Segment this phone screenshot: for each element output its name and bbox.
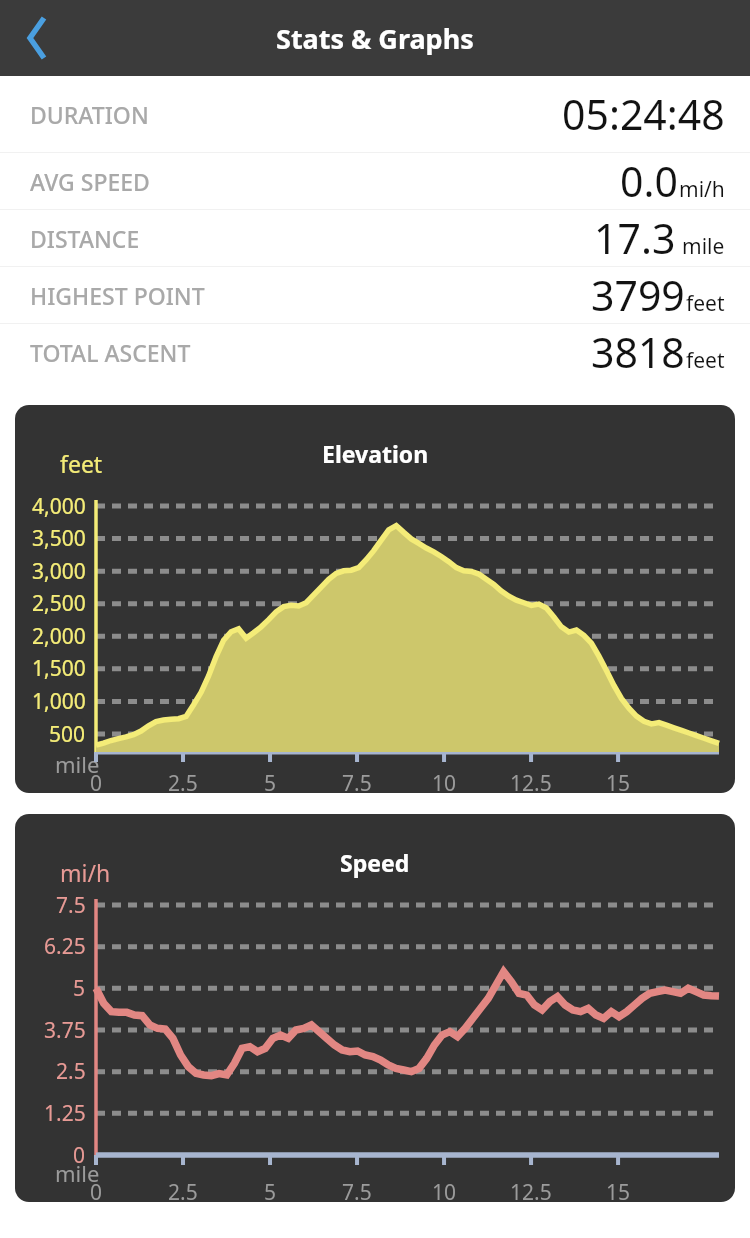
staticText: 0 — [73, 1141, 86, 1170]
button[interactable]: Back — [4, 8, 64, 68]
staticText: DISTANCE — [30, 223, 140, 254]
button[interactable]: HIGHEST POINT — [0, 267, 750, 323]
staticText: 7.5 — [56, 891, 86, 920]
staticText: 2,000 — [32, 622, 86, 651]
staticText: AVG SPEED — [30, 166, 150, 197]
staticText: mi/h — [60, 857, 111, 888]
staticText: 12.5 — [510, 769, 552, 793]
staticText: 12.5 — [510, 1178, 552, 1202]
button[interactable]: DISTANCE — [0, 210, 750, 266]
staticText: 3799 — [591, 267, 685, 323]
staticText: 1,000 — [32, 687, 86, 716]
staticText: feet — [686, 289, 725, 318]
staticText: Elevation — [322, 438, 429, 469]
button[interactable]: Elevation — [15, 405, 735, 793]
staticText: DURATION — [30, 99, 149, 130]
staticText: 7.5 — [342, 1178, 372, 1202]
staticText: HIGHEST POINT — [30, 280, 205, 311]
staticText: 15 — [606, 769, 631, 793]
staticText: 3818 — [591, 324, 685, 380]
staticText: 3,000 — [32, 557, 86, 586]
staticText: 0.0 — [620, 153, 678, 209]
staticText: 3.75 — [44, 1016, 86, 1045]
staticText: 10 — [432, 769, 457, 793]
button[interactable]: TOTAL ASCENT — [0, 324, 750, 380]
staticText: 5 — [73, 974, 86, 1003]
staticText: 5 — [264, 1178, 277, 1202]
staticText: mi/h — [679, 175, 725, 204]
staticText: mile — [55, 1158, 100, 1188]
staticText: feet — [686, 346, 725, 375]
staticText: mile — [55, 749, 100, 779]
staticText: 7.5 — [342, 769, 372, 793]
staticText: 6.25 — [44, 932, 86, 961]
staticText: 3,500 — [32, 524, 86, 553]
staticText: 10 — [432, 1178, 457, 1202]
staticText: 500 — [49, 720, 86, 749]
staticText: Speed — [340, 847, 410, 878]
staticText: 4,000 — [32, 492, 86, 521]
staticText: 0 — [90, 1178, 103, 1202]
button[interactable]: DURATION — [0, 76, 750, 152]
staticText: Stats & Graphs — [276, 20, 474, 57]
staticText: 15 — [606, 1178, 631, 1202]
staticText: TOTAL ASCENT — [30, 337, 191, 368]
button[interactable]: AVG SPEED — [0, 153, 750, 209]
staticText: 2.5 — [168, 769, 198, 793]
staticText: 2.5 — [56, 1057, 86, 1086]
staticText: 2.5 — [168, 1178, 198, 1202]
staticText: mile — [682, 232, 725, 261]
staticText: 5 — [264, 769, 277, 793]
staticText: 2,500 — [32, 589, 86, 618]
staticText: 1.25 — [44, 1099, 86, 1128]
staticText: feet — [60, 448, 103, 479]
staticText: 1,500 — [32, 654, 86, 683]
staticText: 05:24:48 — [562, 86, 725, 142]
button[interactable]: Speed — [15, 814, 735, 1202]
staticText: 17.3 — [594, 210, 676, 266]
staticText: 0 — [90, 769, 103, 793]
